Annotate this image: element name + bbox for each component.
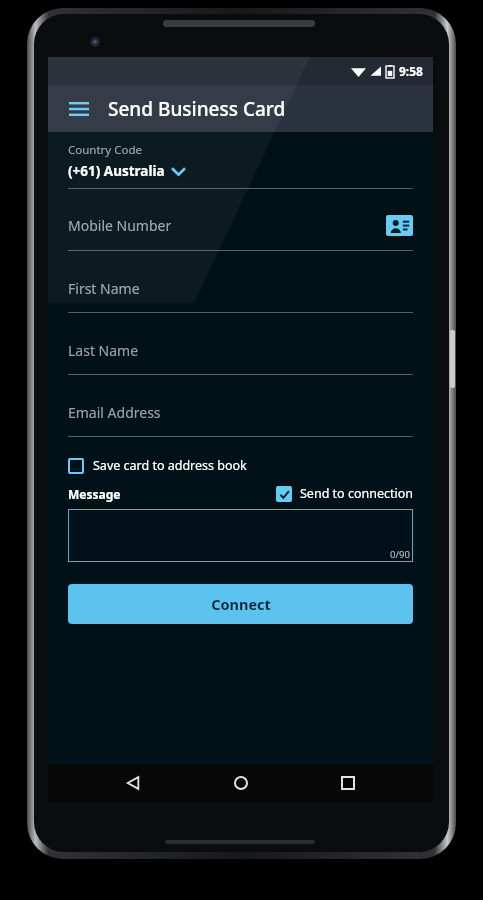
staticText: Message	[68, 486, 121, 502]
staticText: 9:58	[399, 63, 423, 79]
button[interactable]: Recent apps	[325, 764, 371, 802]
staticText: 0/90	[390, 548, 410, 561]
staticText: Send to connection	[300, 485, 413, 502]
staticText: (+61) Australia	[68, 162, 165, 180]
button[interactable]: Save card to address book	[68, 457, 413, 474]
staticText: Save card to address book	[93, 457, 247, 474]
button[interactable]: Email Address	[68, 403, 413, 422]
button[interactable]: Last Name	[68, 341, 413, 360]
staticText: Country Code	[68, 142, 142, 158]
button[interactable]: Connect	[68, 584, 413, 624]
staticText: First Name	[68, 279, 140, 298]
staticText: Last Name	[68, 341, 139, 360]
staticText: Mobile Number	[68, 216, 386, 235]
button[interactable]: Pick contact	[386, 215, 413, 236]
button[interactable]: Back	[110, 764, 156, 802]
button[interactable]: Open navigation menu	[62, 92, 96, 126]
staticText: Email Address	[68, 403, 161, 422]
button[interactable]: (+61) Australia	[68, 162, 413, 180]
staticText: Send Business Card	[108, 96, 286, 122]
button[interactable]: Send to connection	[276, 485, 413, 502]
staticText: Connect	[211, 594, 271, 614]
button[interactable]: Home	[218, 764, 264, 802]
button[interactable]: 0/90	[68, 509, 413, 562]
button[interactable]: First Name	[68, 279, 413, 298]
